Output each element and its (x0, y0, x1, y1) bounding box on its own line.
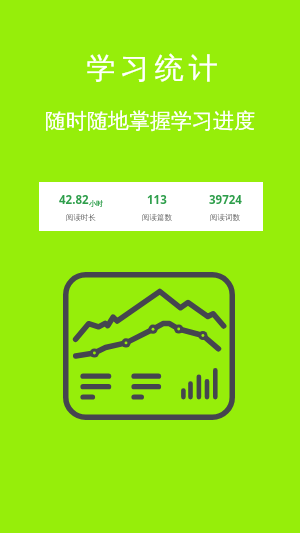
button[interactable]: 42.82 (31, 182, 131, 231)
staticText: 阅读时长 (66, 213, 96, 222)
staticText: 阅读词数 (210, 213, 240, 222)
staticText: 42.82 (59, 192, 89, 208)
staticText: 113 (147, 192, 167, 208)
button[interactable]: 113 (107, 182, 207, 231)
staticText: 阅读篇数 (142, 213, 172, 222)
button[interactable]: 39724 (175, 182, 275, 231)
staticText: 小时 (89, 199, 103, 208)
staticText: 随时随地掌握学习进度 (45, 108, 255, 134)
staticText: 学习统计 (84, 50, 220, 87)
staticText: 39724 (209, 192, 242, 208)
